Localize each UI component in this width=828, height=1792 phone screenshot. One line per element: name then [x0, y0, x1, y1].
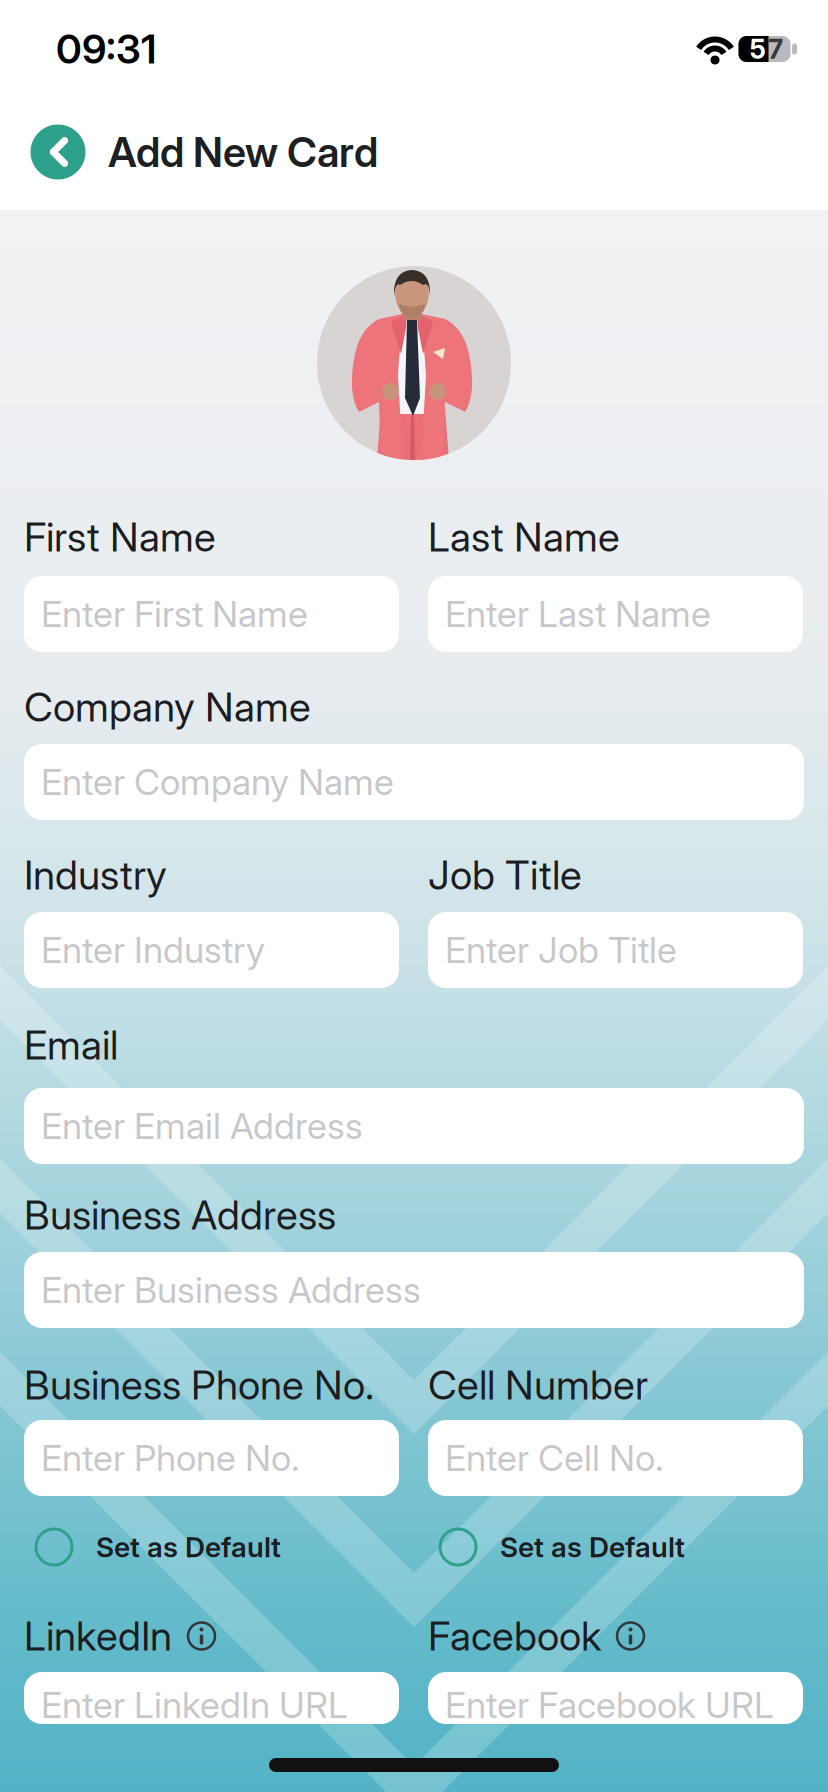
button[interactable]: Enter Facebook URL	[428, 1672, 803, 1724]
staticText: LinkedIn	[24, 1612, 172, 1660]
staticText: Industry	[24, 851, 167, 899]
staticText: Business Address	[24, 1191, 336, 1239]
staticText: Enter Cell No.	[445, 1436, 664, 1480]
button[interactable]: Enter Email Address	[24, 1088, 804, 1164]
staticText: First Name	[24, 513, 216, 561]
staticText: Enter Last Name	[445, 592, 711, 636]
staticText: Facebook	[428, 1612, 601, 1660]
staticText: Set as Default	[500, 1530, 685, 1564]
button[interactable]: Enter LinkedIn URL	[24, 1672, 399, 1724]
staticText: Enter Company Name	[41, 760, 394, 804]
staticText: Set as Default	[96, 1530, 281, 1564]
staticText: Email	[24, 1021, 118, 1069]
button[interactable]: Enter Business Address	[24, 1252, 804, 1328]
staticText: Add New Card	[108, 127, 378, 177]
staticText: Enter Email Address	[41, 1104, 363, 1148]
button[interactable]: Enter Last Name	[428, 576, 803, 652]
staticText: Enter Facebook URL	[445, 1683, 774, 1727]
button[interactable]: Enter Industry	[24, 912, 399, 988]
staticText: Enter Industry	[41, 928, 265, 972]
staticText: 7	[768, 33, 783, 65]
staticText: Business Phone No.	[24, 1361, 374, 1409]
button[interactable]: Enter Job Title	[428, 912, 803, 988]
staticText: Enter Business Address	[41, 1268, 421, 1312]
staticText: Enter Job Title	[445, 928, 677, 972]
button[interactable]: Enter Cell No.	[428, 1420, 803, 1496]
staticText: Cell Number	[428, 1361, 648, 1409]
staticText: Enter LinkedIn URL	[41, 1683, 348, 1727]
button[interactable]: Set as Default	[440, 1529, 685, 1565]
button[interactable]: Enter Company Name	[24, 744, 804, 820]
button[interactable]: Back	[30, 124, 85, 179]
button[interactable]: Info	[617, 1622, 644, 1649]
button[interactable]: Enter First Name	[24, 576, 399, 652]
staticText: Company Name	[24, 683, 311, 731]
button[interactable]: Add photo	[317, 266, 511, 460]
staticText: 5	[749, 33, 765, 65]
staticText: Job Title	[428, 851, 582, 899]
staticText: Last Name	[428, 513, 620, 561]
staticText: Enter Phone No.	[41, 1436, 300, 1480]
button[interactable]: Set as Default	[36, 1529, 281, 1565]
staticText: Enter First Name	[41, 592, 308, 636]
button[interactable]: Enter Phone No.	[24, 1420, 399, 1496]
staticText: 09:31	[56, 25, 156, 73]
button[interactable]: Info	[188, 1622, 215, 1649]
